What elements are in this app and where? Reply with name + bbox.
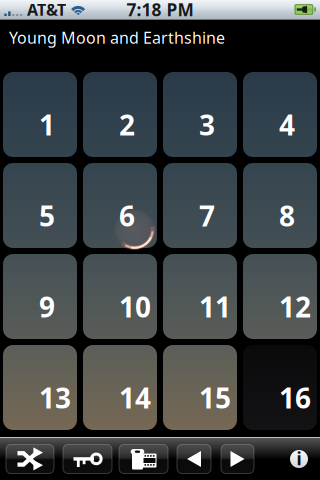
button[interactable]: Slideshow	[119, 444, 168, 473]
staticText: 3	[199, 106, 215, 143]
staticText: 6	[119, 197, 135, 234]
staticText: 16	[279, 379, 311, 416]
button[interactable]: Image 9	[3, 254, 77, 339]
button[interactable]: Image 16	[243, 345, 317, 430]
staticText: 11	[199, 288, 231, 325]
button[interactable]: Image 5	[3, 163, 77, 248]
staticText: Young Moon and Earthshine	[9, 27, 225, 48]
button[interactable]: Image 2	[83, 72, 157, 157]
staticText: 8	[279, 197, 295, 234]
button[interactable]: Image 11	[163, 254, 237, 339]
button[interactable]: Image 4	[243, 72, 317, 157]
staticText: 7	[199, 197, 215, 234]
button[interactable]: Shuffle	[6, 444, 54, 473]
button[interactable]: Image 14	[83, 345, 157, 430]
staticText: 4	[279, 106, 295, 143]
button[interactable]: Previous	[177, 444, 211, 473]
button[interactable]: Image 7	[163, 163, 237, 248]
button[interactable]: Image 6	[83, 163, 157, 248]
button[interactable]: Image 13	[3, 345, 77, 430]
staticText: i	[296, 447, 301, 470]
button[interactable]: Image 10	[83, 254, 157, 339]
staticText: 5	[39, 197, 55, 234]
staticText: 1	[39, 106, 55, 143]
button[interactable]: Image 12	[243, 254, 317, 339]
staticText: 13	[39, 379, 71, 416]
staticText: 2	[119, 106, 135, 143]
button[interactable]: Image 3	[163, 72, 237, 157]
staticText: AT&T	[27, 0, 66, 20]
button[interactable]: Next	[221, 444, 254, 473]
button[interactable]: Image 1	[3, 72, 77, 157]
button[interactable]: Image 15	[163, 345, 237, 430]
button[interactable]: Info	[290, 450, 308, 468]
staticText: 10	[119, 288, 151, 325]
staticText: 9	[39, 288, 55, 325]
staticText: 15	[199, 379, 231, 416]
button[interactable]: Unlock	[63, 444, 112, 473]
staticText: 12	[279, 288, 311, 325]
staticText: 14	[119, 379, 151, 416]
staticText: 7:18 PM	[126, 0, 193, 21]
button[interactable]: Image 8	[243, 163, 317, 248]
